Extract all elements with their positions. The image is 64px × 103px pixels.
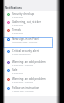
staticText: 2 days ago [12,24,24,27]
button[interactable]: Sale [3,68,53,76]
staticText: 2 days ago · Chrome [12,64,33,67]
button[interactable]: Security checkup [3,12,53,20]
staticText: Sale [12,68,18,72]
button[interactable]: Gathering, cut, sticker [3,20,53,28]
staticText: New sign-in on Pixel [12,37,39,41]
staticText: 2-step verification [12,53,31,56]
staticText: 3 days ago [12,32,24,35]
button[interactable]: Warning: an odd problem [3,77,53,85]
staticText: Trends [12,28,21,32]
staticText: Critical security alert [12,49,39,53]
staticText: 2 days ago [12,16,24,19]
staticText: 1 week ago · Chrome [12,90,34,93]
button[interactable]: Critical security alert [3,49,53,57]
button[interactable]: Warning: an odd problem [3,60,53,68]
staticText: Security checkup [12,12,35,16]
staticText: 3 days ago · Chrome [12,81,33,84]
staticText: Gathering, cut, sticker [12,20,41,24]
button[interactable]: Follow an instruction [3,86,53,94]
button[interactable]: Trends [3,28,53,36]
staticText: Notifications [5,6,22,10]
staticText: 5 days ago [12,72,24,75]
staticText: Mountain View · Chrome [12,41,38,44]
button[interactable]: New sign-in on Pixel [3,37,53,45]
staticText: Warning: an odd problem [12,60,46,64]
staticText: Follow an instruction [12,86,40,90]
staticText: Warning: an odd problem [12,77,46,81]
